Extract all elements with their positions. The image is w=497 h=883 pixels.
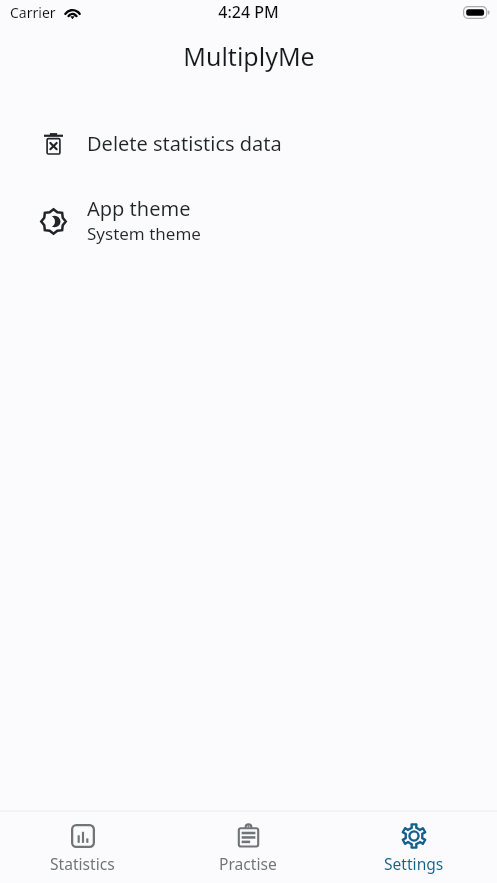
other: Wi-Fi [63, 6, 82, 19]
button[interactable]: App theme [0, 187, 497, 253]
staticText: MultiplyMe [183, 39, 315, 73]
staticText: Statistics [50, 853, 115, 874]
other: Battery full [463, 6, 490, 19]
other: App theme [24, 207, 82, 234]
staticText: Carrier [10, 3, 56, 22]
staticText: Delete statistics data [87, 130, 282, 157]
staticText: Practise [219, 853, 277, 874]
button[interactable]: Practise [165, 817, 331, 879]
button[interactable]: Settings [331, 817, 497, 879]
button[interactable]: Delete statistics data [0, 122, 497, 165]
staticText: 4:24 PM [218, 1, 279, 23]
button[interactable]: Statistics [0, 817, 165, 879]
staticText: System theme [87, 222, 201, 245]
staticText: Settings [384, 853, 444, 874]
staticText: App theme [87, 195, 191, 222]
other: Delete statistics data [24, 133, 82, 155]
